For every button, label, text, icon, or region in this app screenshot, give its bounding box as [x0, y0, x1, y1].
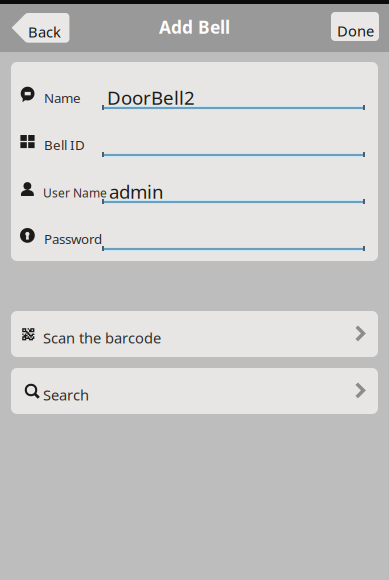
button[interactable]: Back [11, 13, 70, 43]
staticText: Search [43, 385, 89, 404]
staticText: DoorBell2 [107, 85, 195, 110]
button[interactable]: Scan the barcode [11, 311, 378, 357]
staticText: Password [44, 230, 102, 248]
staticText: Name [44, 89, 81, 107]
staticText: Back [28, 22, 61, 41]
staticText: admin [109, 179, 164, 204]
staticText: Done [337, 21, 374, 40]
button[interactable]: Search [11, 368, 378, 414]
staticText: Add Bell [159, 15, 230, 38]
staticText: Bell ID [44, 136, 85, 154]
staticText: Scan the barcode [43, 328, 161, 347]
staticText: User Name [43, 185, 107, 201]
button[interactable]: Done [331, 12, 379, 41]
